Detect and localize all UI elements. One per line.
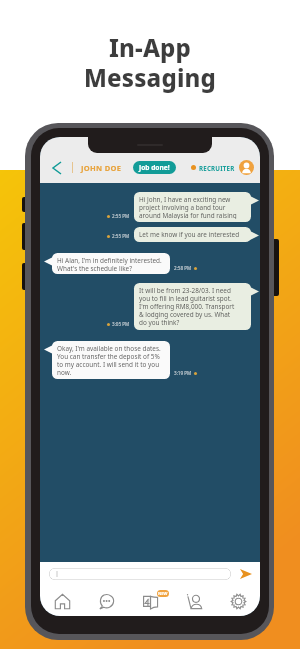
staticText: Okay, I'm available on those dates. You … (57, 344, 161, 376)
button[interactable]: Okay, I'm available on those dates. You … (52, 341, 170, 379)
staticText: 2:55 PM (112, 233, 130, 239)
staticText: 3:05 PM (112, 321, 130, 327)
staticText: RECRUITER (199, 164, 235, 172)
button[interactable]: Settings (225, 588, 251, 614)
button[interactable]: Message input (49, 568, 231, 580)
button[interactable]: Back (49, 160, 65, 176)
button[interactable]: Home (49, 588, 75, 614)
staticText: 2:58 PM (174, 265, 192, 271)
button[interactable]: Send (239, 567, 253, 581)
button[interactable]: Profile (181, 588, 207, 614)
button[interactable]: Messages (93, 588, 119, 614)
button[interactable]: Job done! (133, 161, 176, 174)
staticText: JOHN DOE (81, 163, 122, 173)
button[interactable]: Hi John, I have an exciting new project … (134, 192, 251, 222)
staticText: In-App Messaging (0, 31, 300, 94)
staticText: 2:55 PM (112, 213, 130, 219)
button[interactable]: Let me know if you are interested (134, 227, 251, 242)
staticText: Hi John, I have an exciting new project … (139, 195, 237, 219)
staticText: Let me know if you are interested (139, 230, 240, 239)
staticText: Job done! (139, 163, 170, 172)
staticText: NEW (158, 591, 168, 596)
button[interactable]: Hi Alan, I'm in definitely interested. W… (52, 253, 170, 274)
button[interactable]: Jobs (137, 588, 163, 614)
staticText: It will be from 23-28/03. I need you to … (139, 286, 235, 327)
button[interactable]: It will be from 23-28/03. I need you to … (134, 283, 251, 330)
staticText: Hi Alan, I'm in definitely interested. W… (57, 256, 162, 271)
staticText: 3:19 PM (174, 370, 192, 376)
button[interactable]: Profile (239, 160, 254, 175)
